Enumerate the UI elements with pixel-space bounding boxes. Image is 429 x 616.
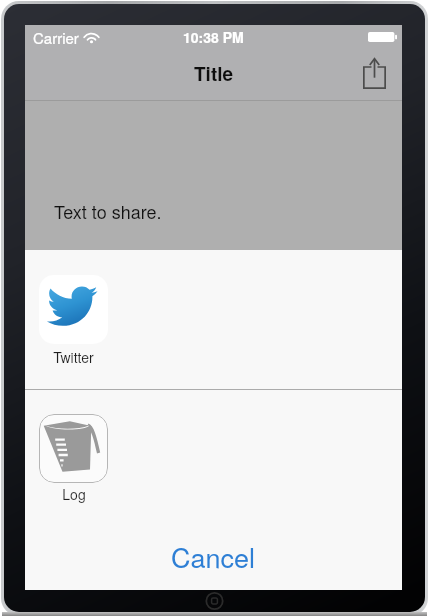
button[interactable]: Cancel xyxy=(25,515,402,590)
staticText: Log xyxy=(62,484,86,504)
staticText: Twitter xyxy=(53,347,94,367)
staticText: Carrier xyxy=(33,27,79,47)
button[interactable]: Twitter xyxy=(25,250,402,388)
button[interactable]: Log xyxy=(25,389,402,527)
staticText: Text to share. xyxy=(54,198,162,224)
staticText: Cancel xyxy=(171,537,256,576)
button[interactable]: Share xyxy=(352,51,396,95)
staticText: 10:38 PM xyxy=(183,27,244,47)
staticText: Title xyxy=(194,60,234,87)
